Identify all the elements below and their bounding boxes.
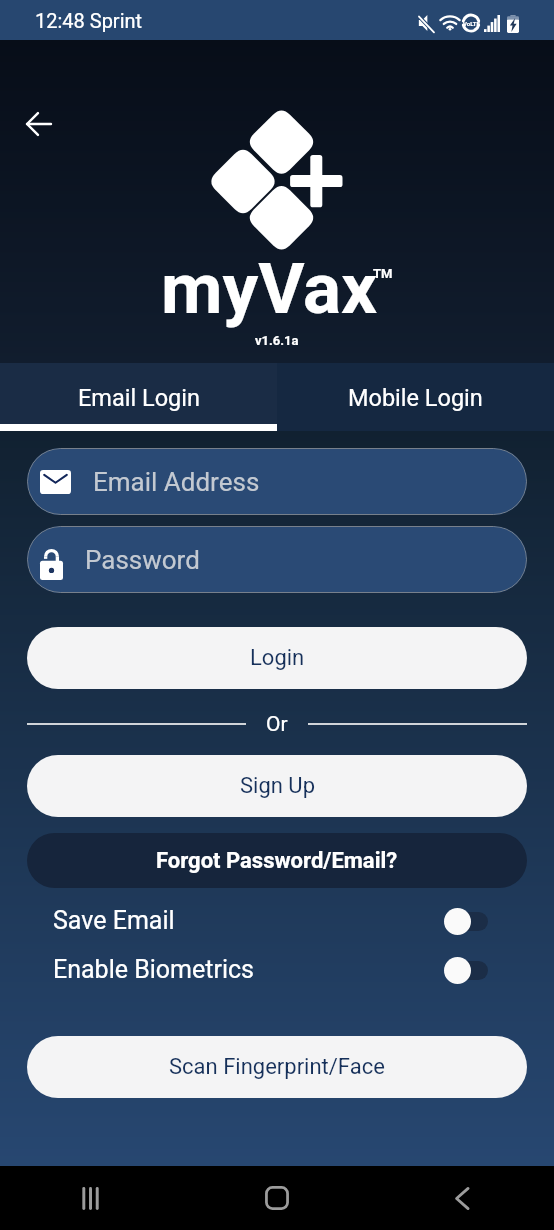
staticText: v1.6.1a (255, 333, 299, 348)
button[interactable]: Email Address (27, 448, 527, 515)
button[interactable]: Email Login (0, 363, 277, 431)
staticText: Or (266, 712, 288, 737)
button[interactable]: Mobile Login (277, 363, 554, 431)
button[interactable]: Save Email (27, 896, 527, 945)
button[interactable]: Scan Fingerprint/Face (27, 1036, 527, 1098)
staticText: Email Login (78, 384, 200, 412)
button[interactable]: Login (27, 627, 527, 689)
button[interactable]: Sign Up (27, 755, 527, 817)
staticText: Save Email (53, 906, 175, 935)
staticText: myVax (161, 247, 378, 330)
button[interactable]: Back (17, 102, 61, 146)
staticText: Password (85, 545, 200, 575)
staticText: 12:48 Sprint (35, 9, 143, 32)
staticText: Forgot Password/Email? (156, 848, 398, 874)
staticText: Login (250, 645, 305, 671)
button[interactable]: Home (184, 1166, 369, 1230)
button[interactable]: Recent apps (0, 1166, 184, 1230)
staticText: TM (373, 266, 393, 281)
button[interactable]: Back (369, 1166, 554, 1230)
button[interactable]: Forgot Password/Email? (27, 833, 527, 888)
staticText: Scan Fingerprint/Face (169, 1054, 385, 1080)
staticText: Sign Up (240, 773, 315, 799)
staticText: Email Address (93, 467, 260, 497)
staticText: Mobile Login (348, 384, 483, 412)
staticText: VoLTE (463, 20, 480, 27)
button[interactable]: Enable Biometrics (27, 945, 527, 994)
button[interactable]: Password (27, 526, 527, 593)
staticText: Enable Biometrics (53, 955, 255, 984)
